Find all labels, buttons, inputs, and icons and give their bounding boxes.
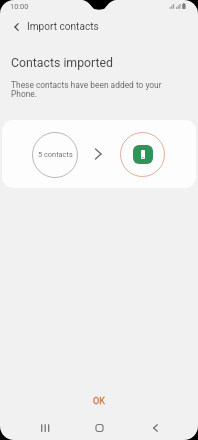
staticText: These contacts have been added to your P… bbox=[11, 80, 162, 99]
staticText: 10:00 bbox=[10, 2, 29, 11]
staticText: Import contacts bbox=[27, 21, 99, 33]
staticText: Contacts imported bbox=[11, 56, 114, 70]
staticText: 5 contacts bbox=[38, 150, 73, 159]
button[interactable]: Navigate up bbox=[7, 17, 27, 37]
button[interactable]: 5 contacts bbox=[2, 120, 196, 188]
button[interactable]: Back bbox=[139, 415, 172, 440]
button[interactable]: Home bbox=[83, 415, 116, 440]
staticText: OK bbox=[93, 396, 105, 407]
button[interactable]: Recent apps bbox=[28, 415, 61, 440]
button[interactable]: OK bbox=[69, 391, 129, 411]
